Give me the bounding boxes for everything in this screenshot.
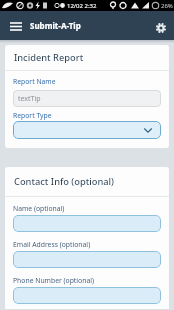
staticText: Report Type [13,111,52,120]
button[interactable] [13,287,161,304]
staticText: Email Address (optional) [13,240,91,249]
staticText: Name (optional) [13,204,65,213]
button[interactable] [153,20,169,36]
button[interactable] [13,215,161,232]
button[interactable] [13,121,161,139]
staticText: Contact Info (optional) [14,175,115,188]
staticText: 26% [161,2,173,10]
staticText: Phone Number (optional) [13,276,94,285]
staticText: Incident Report [14,51,84,64]
button[interactable]: textTip [13,90,161,107]
staticText: Report Name [13,77,56,86]
staticText: textTip [18,94,41,104]
button[interactable] [7,17,25,35]
button[interactable] [13,251,161,268]
staticText: Submit-A-Tip [30,20,81,31]
staticText: 12/02 2:32 [67,2,97,10]
